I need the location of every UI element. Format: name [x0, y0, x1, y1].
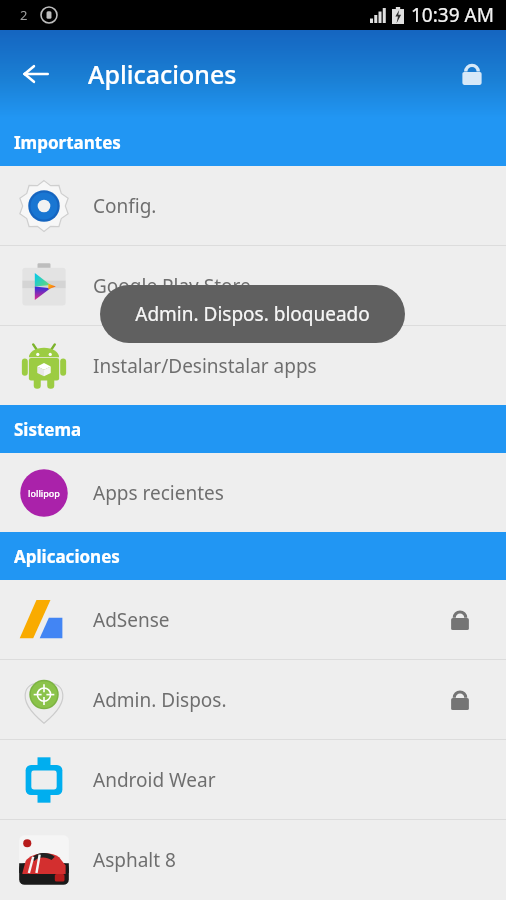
button[interactable]: Instalar/Desinstalar apps [0, 326, 506, 405]
staticText: AdSense [93, 607, 170, 633]
staticText: lollipop [28, 487, 60, 499]
staticText: 10:39 AM [411, 2, 494, 28]
staticText: Asphalt 8 [93, 847, 176, 873]
staticText: Apps recientes [93, 480, 224, 506]
staticText: Google Play Store [93, 273, 251, 299]
button[interactable]: Back [10, 48, 62, 100]
button[interactable]: Admin. Dispos. [0, 660, 506, 739]
staticText: Admin. Dispos. [93, 687, 227, 713]
staticText: Android Wear [93, 767, 216, 793]
staticText: Sistema [14, 418, 82, 441]
staticText: Aplicaciones [14, 545, 120, 568]
button[interactable]: Android Wear [0, 740, 506, 819]
staticText: Aplicaciones [88, 57, 237, 91]
staticText: 2 [20, 6, 28, 24]
button[interactable]: lollipop [0, 453, 506, 532]
button[interactable]: Asphalt 8 [0, 820, 506, 899]
button[interactable]: Lock [446, 48, 498, 100]
staticText: Admin. Dispos. bloqueado [135, 301, 370, 327]
button[interactable]: Google Play Store [0, 246, 506, 325]
staticText: Importantes [14, 131, 121, 154]
staticText: Config. [93, 193, 157, 219]
staticText: Instalar/Desinstalar apps [93, 353, 317, 379]
button[interactable]: Config. [0, 166, 506, 245]
button[interactable]: AdSense [0, 580, 506, 659]
